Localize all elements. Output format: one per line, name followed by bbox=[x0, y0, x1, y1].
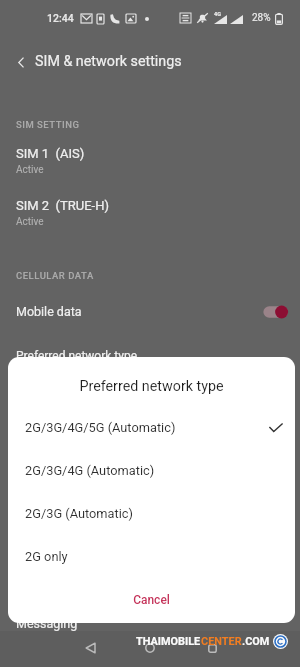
button[interactable]: 2G/3G/4G (Automatic) bbox=[8, 453, 295, 487]
button[interactable]: Back bbox=[75, 633, 105, 663]
staticText: 2G only bbox=[25, 549, 68, 564]
staticText: Preferred network type bbox=[8, 378, 295, 395]
button[interactable]: 2G only bbox=[8, 539, 295, 573]
staticText: Active bbox=[16, 216, 44, 228]
staticText: SIM & network settings bbox=[35, 53, 182, 70]
staticText: 2G/3G/4G (Automatic) bbox=[25, 463, 155, 478]
staticText: Preferred network type bbox=[16, 349, 138, 363]
staticText: CELLULAR DATA bbox=[16, 270, 94, 281]
staticText: 2G/3G/4G/5G (Automatic) bbox=[25, 420, 176, 435]
staticText: THAIMOBILE bbox=[136, 635, 201, 648]
staticText: SIM 2 (TRUE-H) bbox=[16, 198, 110, 213]
staticText: Cancel bbox=[133, 593, 170, 607]
staticText: SIM SETTING bbox=[16, 119, 80, 130]
staticText: Active bbox=[16, 164, 44, 176]
staticText: 28% bbox=[252, 12, 271, 24]
staticText: Messaging bbox=[16, 616, 78, 631]
staticText: Mobile data bbox=[16, 304, 82, 319]
button[interactable]: Navigate up bbox=[9, 50, 33, 74]
button[interactable]: 2G/3G/4G/5G (Automatic) bbox=[8, 410, 295, 444]
button[interactable]: Recent apps bbox=[197, 633, 227, 663]
staticText: CENTER bbox=[201, 635, 242, 648]
staticText: .COM bbox=[242, 635, 270, 648]
staticText: 2G/3G (Automatic) bbox=[25, 506, 133, 521]
button[interactable]: Mobile data bbox=[0, 301, 300, 331]
button[interactable]: Home bbox=[135, 633, 165, 663]
staticText: SIM 1 (AIS) bbox=[16, 146, 85, 161]
button[interactable]: Cancel bbox=[8, 585, 295, 615]
button[interactable]: 2G/3G (Automatic) bbox=[8, 496, 295, 530]
staticText: 4G bbox=[214, 11, 221, 17]
button[interactable]: SIM 1 (AIS) bbox=[0, 140, 300, 186]
button[interactable]: SIM 2 (TRUE-H) bbox=[0, 192, 300, 238]
staticText: 12:44 bbox=[47, 12, 74, 24]
